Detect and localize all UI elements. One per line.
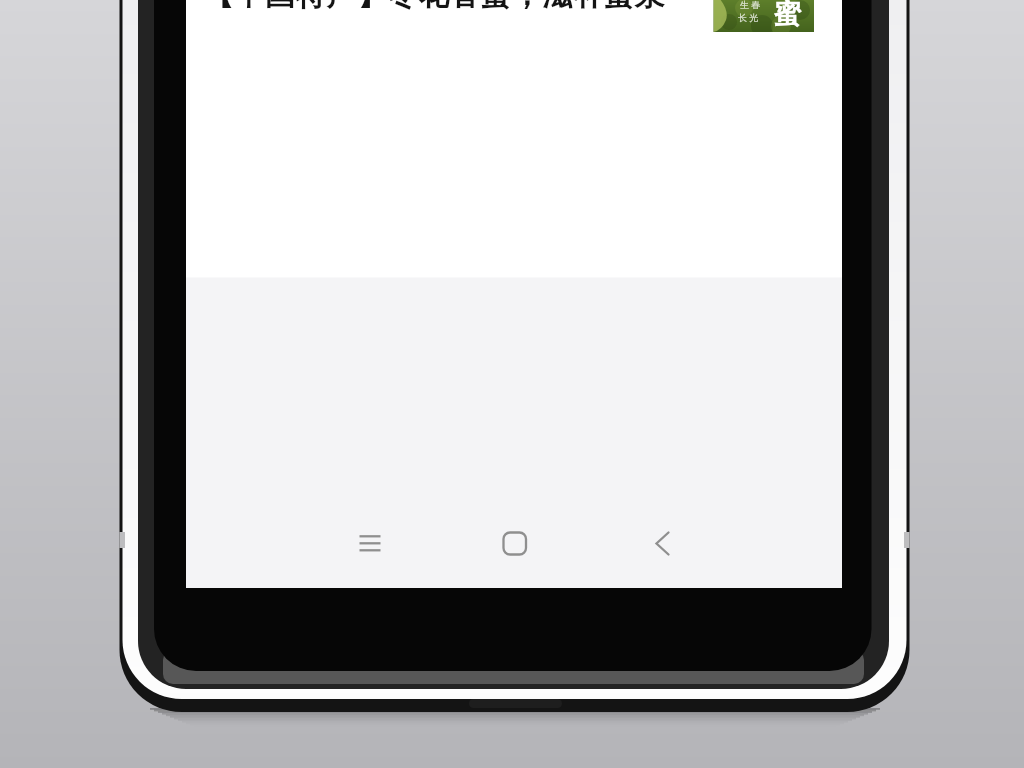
staticText: 长 光 [738, 11, 759, 23]
button[interactable] [346, 522, 394, 566]
button[interactable] [640, 522, 688, 566]
staticText: 生 春 [740, 0, 761, 10]
button[interactable] [186, 0, 842, 44]
button[interactable] [490, 522, 538, 566]
staticText: 蜜 [774, 0, 801, 31]
staticText: 【中国特产】枣花香蜜，滋补蜜浆 [203, 0, 665, 14]
